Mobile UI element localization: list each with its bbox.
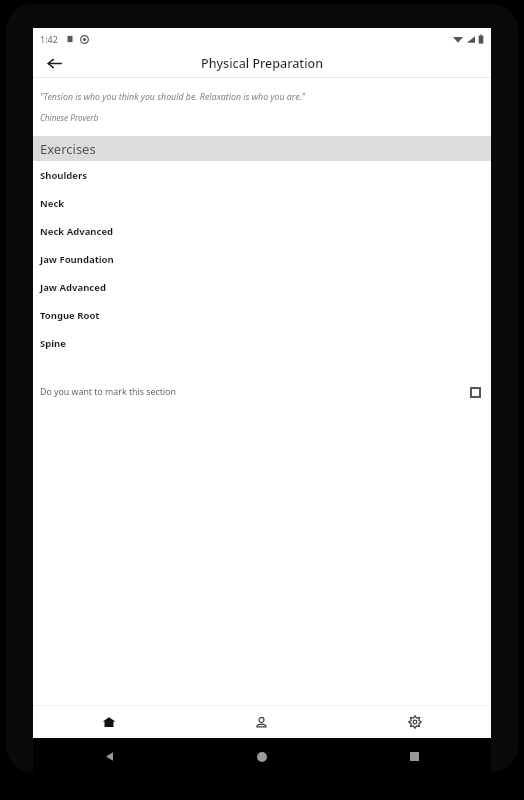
button[interactable]: Back <box>33 738 185 775</box>
button[interactable]: Home <box>185 738 338 775</box>
button[interactable]: Recent apps <box>338 738 491 775</box>
button[interactable]: Profile <box>185 706 338 738</box>
staticText: Do you want to mark this section <box>40 386 176 398</box>
staticText: Tongue Root <box>40 309 100 322</box>
button[interactable]: Do you want to mark this section <box>33 379 491 405</box>
staticText: Physical Preparation <box>201 55 323 72</box>
staticText: Shoulders <box>40 169 88 182</box>
button[interactable]: Back <box>39 49 69 77</box>
button[interactable]: Spine <box>33 329 491 357</box>
button[interactable]: Jaw Foundation <box>33 245 491 273</box>
staticText: Exercises <box>40 140 96 158</box>
staticText: "Tension is who you think you should be.… <box>40 91 306 103</box>
other: Mark this section checkbox <box>470 387 481 398</box>
staticText: Jaw Foundation <box>40 253 114 266</box>
staticText: Spine <box>40 337 66 350</box>
button[interactable]: Settings <box>338 706 491 738</box>
button[interactable]: Neck <box>33 189 491 217</box>
button[interactable]: Home <box>33 706 185 738</box>
staticText: Jaw Advanced <box>40 281 106 294</box>
button[interactable]: Neck Advanced <box>33 217 491 245</box>
staticText: Chinese Proverb <box>40 112 99 123</box>
staticText: Neck Advanced <box>40 225 114 238</box>
button[interactable]: Jaw Advanced <box>33 273 491 301</box>
button[interactable]: Shoulders <box>33 161 491 189</box>
staticText: 1:42 <box>40 33 58 45</box>
staticText: Neck <box>40 197 65 210</box>
button[interactable]: Tongue Root <box>33 301 491 329</box>
